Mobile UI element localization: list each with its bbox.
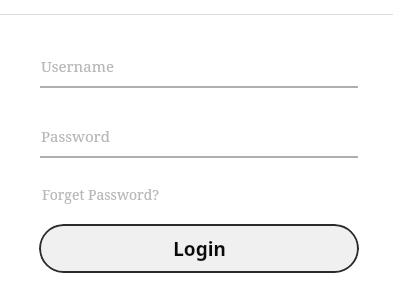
button[interactable]: Password (40, 124, 358, 158)
staticText: Username (41, 56, 114, 76)
button[interactable]: Login (39, 224, 359, 273)
button[interactable]: Forget Password? (40, 182, 161, 207)
staticText: Login (173, 236, 226, 262)
staticText: Password (41, 126, 110, 146)
button[interactable]: Username (40, 54, 358, 88)
staticText: Forget Password? (42, 185, 159, 204)
